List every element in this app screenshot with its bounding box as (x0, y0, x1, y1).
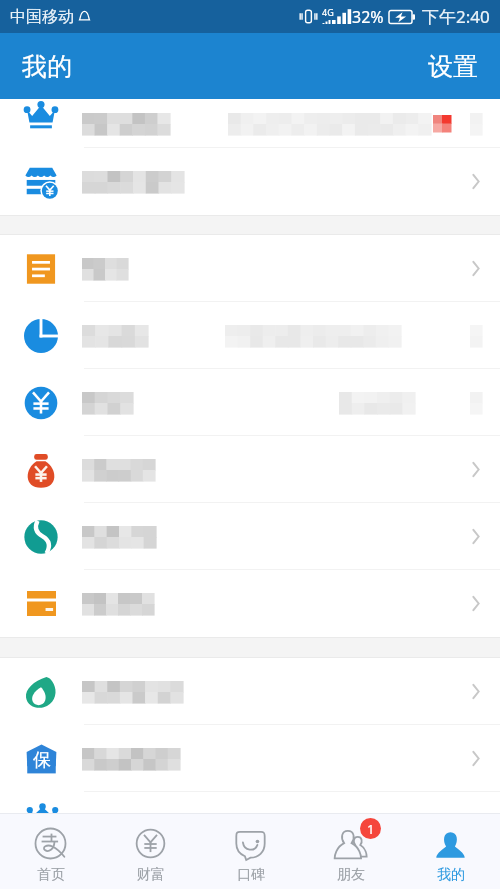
staticText: 中国移动 (10, 7, 74, 27)
button[interactable] (0, 658, 500, 725)
staticText: 设置 (428, 51, 478, 82)
staticText: 1 (367, 820, 375, 838)
button[interactable] (0, 302, 500, 369)
staticText: 32% (352, 6, 384, 28)
staticText: 下午2:40 (422, 5, 490, 28)
staticText: 财富 (137, 866, 165, 884)
button[interactable]: 财富 (100, 813, 200, 889)
staticText: 口碑 (237, 866, 265, 884)
button[interactable]: 我的 (400, 813, 500, 889)
button[interactable]: 首页 (0, 813, 100, 889)
button[interactable] (0, 99, 500, 148)
button[interactable]: 口碑 (200, 813, 300, 889)
button[interactable]: 1 (300, 813, 400, 889)
staticText: 4G (322, 6, 334, 18)
button[interactable] (0, 369, 500, 436)
staticText: 朋友 (337, 866, 365, 884)
staticText: 我的 (437, 866, 465, 884)
button[interactable] (0, 570, 500, 637)
staticText: 保 (33, 749, 51, 772)
button[interactable]: 保 (0, 725, 500, 792)
button[interactable] (0, 436, 500, 503)
staticText: 我的 (22, 51, 72, 82)
button[interactable] (0, 235, 500, 302)
button[interactable]: 设置 (408, 37, 500, 96)
staticText: 首页 (37, 866, 65, 884)
button[interactable] (0, 148, 500, 215)
button[interactable] (0, 503, 500, 570)
